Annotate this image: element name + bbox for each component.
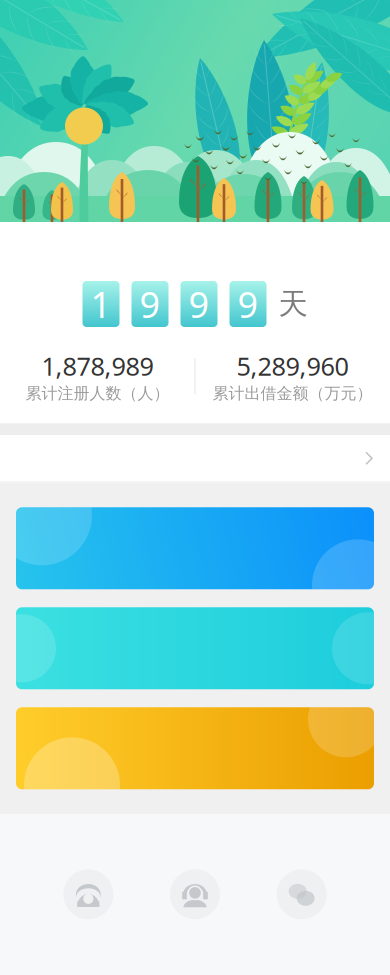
button[interactable] (16, 507, 374, 589)
button[interactable] (16, 707, 374, 789)
button[interactable]: 电话客服 (63, 869, 113, 919)
button[interactable]: 在线客服 (170, 869, 220, 919)
staticText: 累计注册人数（人） (25, 384, 169, 403)
staticText: 5,289,960 (236, 349, 348, 383)
button[interactable] (16, 607, 374, 689)
staticText: 9 (139, 280, 160, 328)
staticText: 累计出借金额（万元） (212, 384, 372, 403)
staticText: 9 (188, 280, 209, 328)
button[interactable]: 消息 (277, 869, 327, 919)
staticText: 1 (90, 280, 111, 328)
staticText: 9 (237, 280, 258, 328)
staticText: 1,878,989 (41, 349, 153, 383)
staticText: 天 (278, 286, 307, 322)
